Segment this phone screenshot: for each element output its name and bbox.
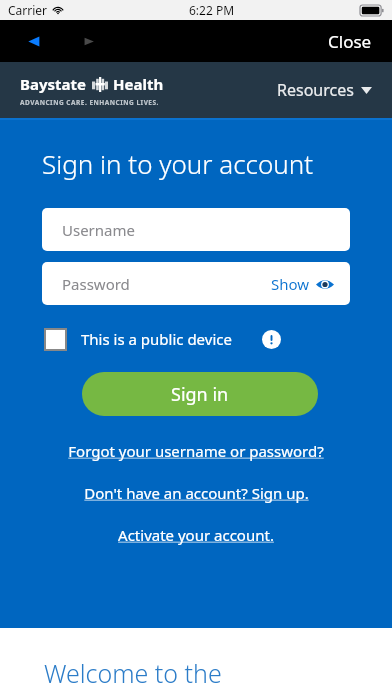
staticText: Sign in to your account	[42, 146, 314, 181]
button[interactable]: Password	[42, 262, 350, 305]
button[interactable]: Close	[324, 24, 376, 59]
staticText: Sign in	[171, 382, 229, 407]
staticText: Username	[62, 220, 135, 240]
staticText: Resources	[277, 79, 354, 101]
button[interactable]: Don't have an account? Sign up.	[84, 483, 309, 503]
staticText: Activate your account.	[118, 525, 274, 545]
staticText: Welcome to the	[44, 656, 222, 690]
staticText: Baystate	[20, 74, 87, 94]
staticText: 6:22 PM	[189, 2, 235, 18]
other: Show password	[316, 278, 334, 291]
staticText: Don't have an account? Sign up.	[84, 483, 309, 503]
button[interactable]: Back	[16, 24, 50, 58]
button[interactable]: Forgot your username or password?	[68, 441, 324, 461]
staticText: Health	[113, 74, 164, 94]
button[interactable]: More information	[262, 330, 281, 349]
staticText: Close	[328, 30, 372, 53]
staticText: Carrier	[8, 2, 48, 18]
staticText: Forgot your username or password?	[68, 441, 324, 461]
button[interactable]: This is a public device	[81, 329, 232, 349]
button[interactable]: Activate your account.	[118, 525, 274, 545]
button[interactable]: Forward	[72, 24, 106, 58]
button[interactable]: This is a public device checkbox	[44, 328, 67, 351]
button[interactable]: Sign in	[82, 372, 318, 416]
staticText: Show	[271, 274, 310, 294]
staticText: Password	[62, 274, 130, 294]
button[interactable]: Username	[42, 208, 350, 251]
button[interactable]: Resources	[257, 69, 392, 111]
button[interactable]: Show	[271, 274, 334, 294]
staticText: ADVANCING CARE. ENHANCING LIVES.	[20, 98, 159, 107]
